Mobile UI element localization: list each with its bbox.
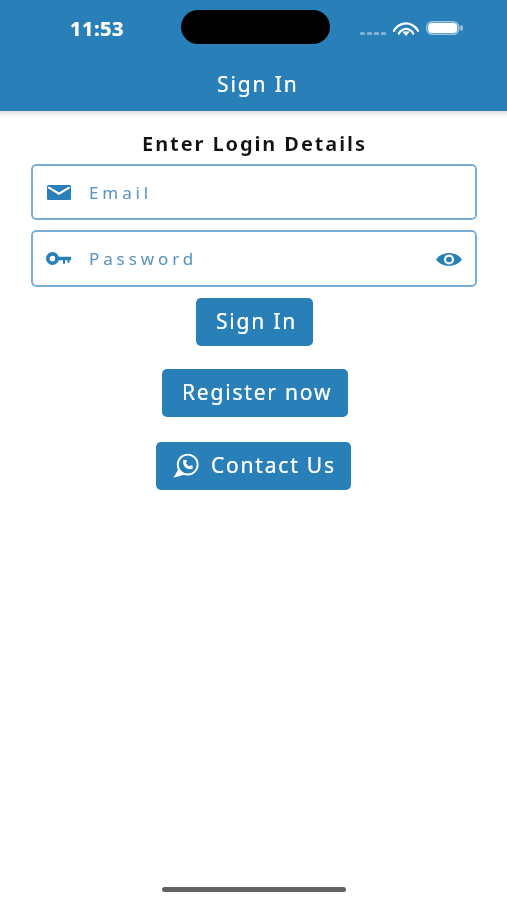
staticText: Register now <box>182 378 333 407</box>
button[interactable]: Register now <box>162 369 348 417</box>
staticText: Sign In <box>217 70 299 99</box>
staticText: Enter Login Details <box>1 130 507 157</box>
staticText: Email <box>89 181 153 204</box>
staticText: Contact Us <box>211 451 336 480</box>
button[interactable]: Password <box>31 230 477 287</box>
button[interactable]: Contact Us <box>156 442 351 490</box>
staticText: 11:53 <box>70 15 124 42</box>
button[interactable]: Email <box>31 164 477 220</box>
staticText: Password <box>89 247 198 270</box>
button[interactable]: Sign In <box>196 298 313 346</box>
button[interactable]: Show password <box>431 241 467 277</box>
staticText: Sign In <box>216 307 297 336</box>
